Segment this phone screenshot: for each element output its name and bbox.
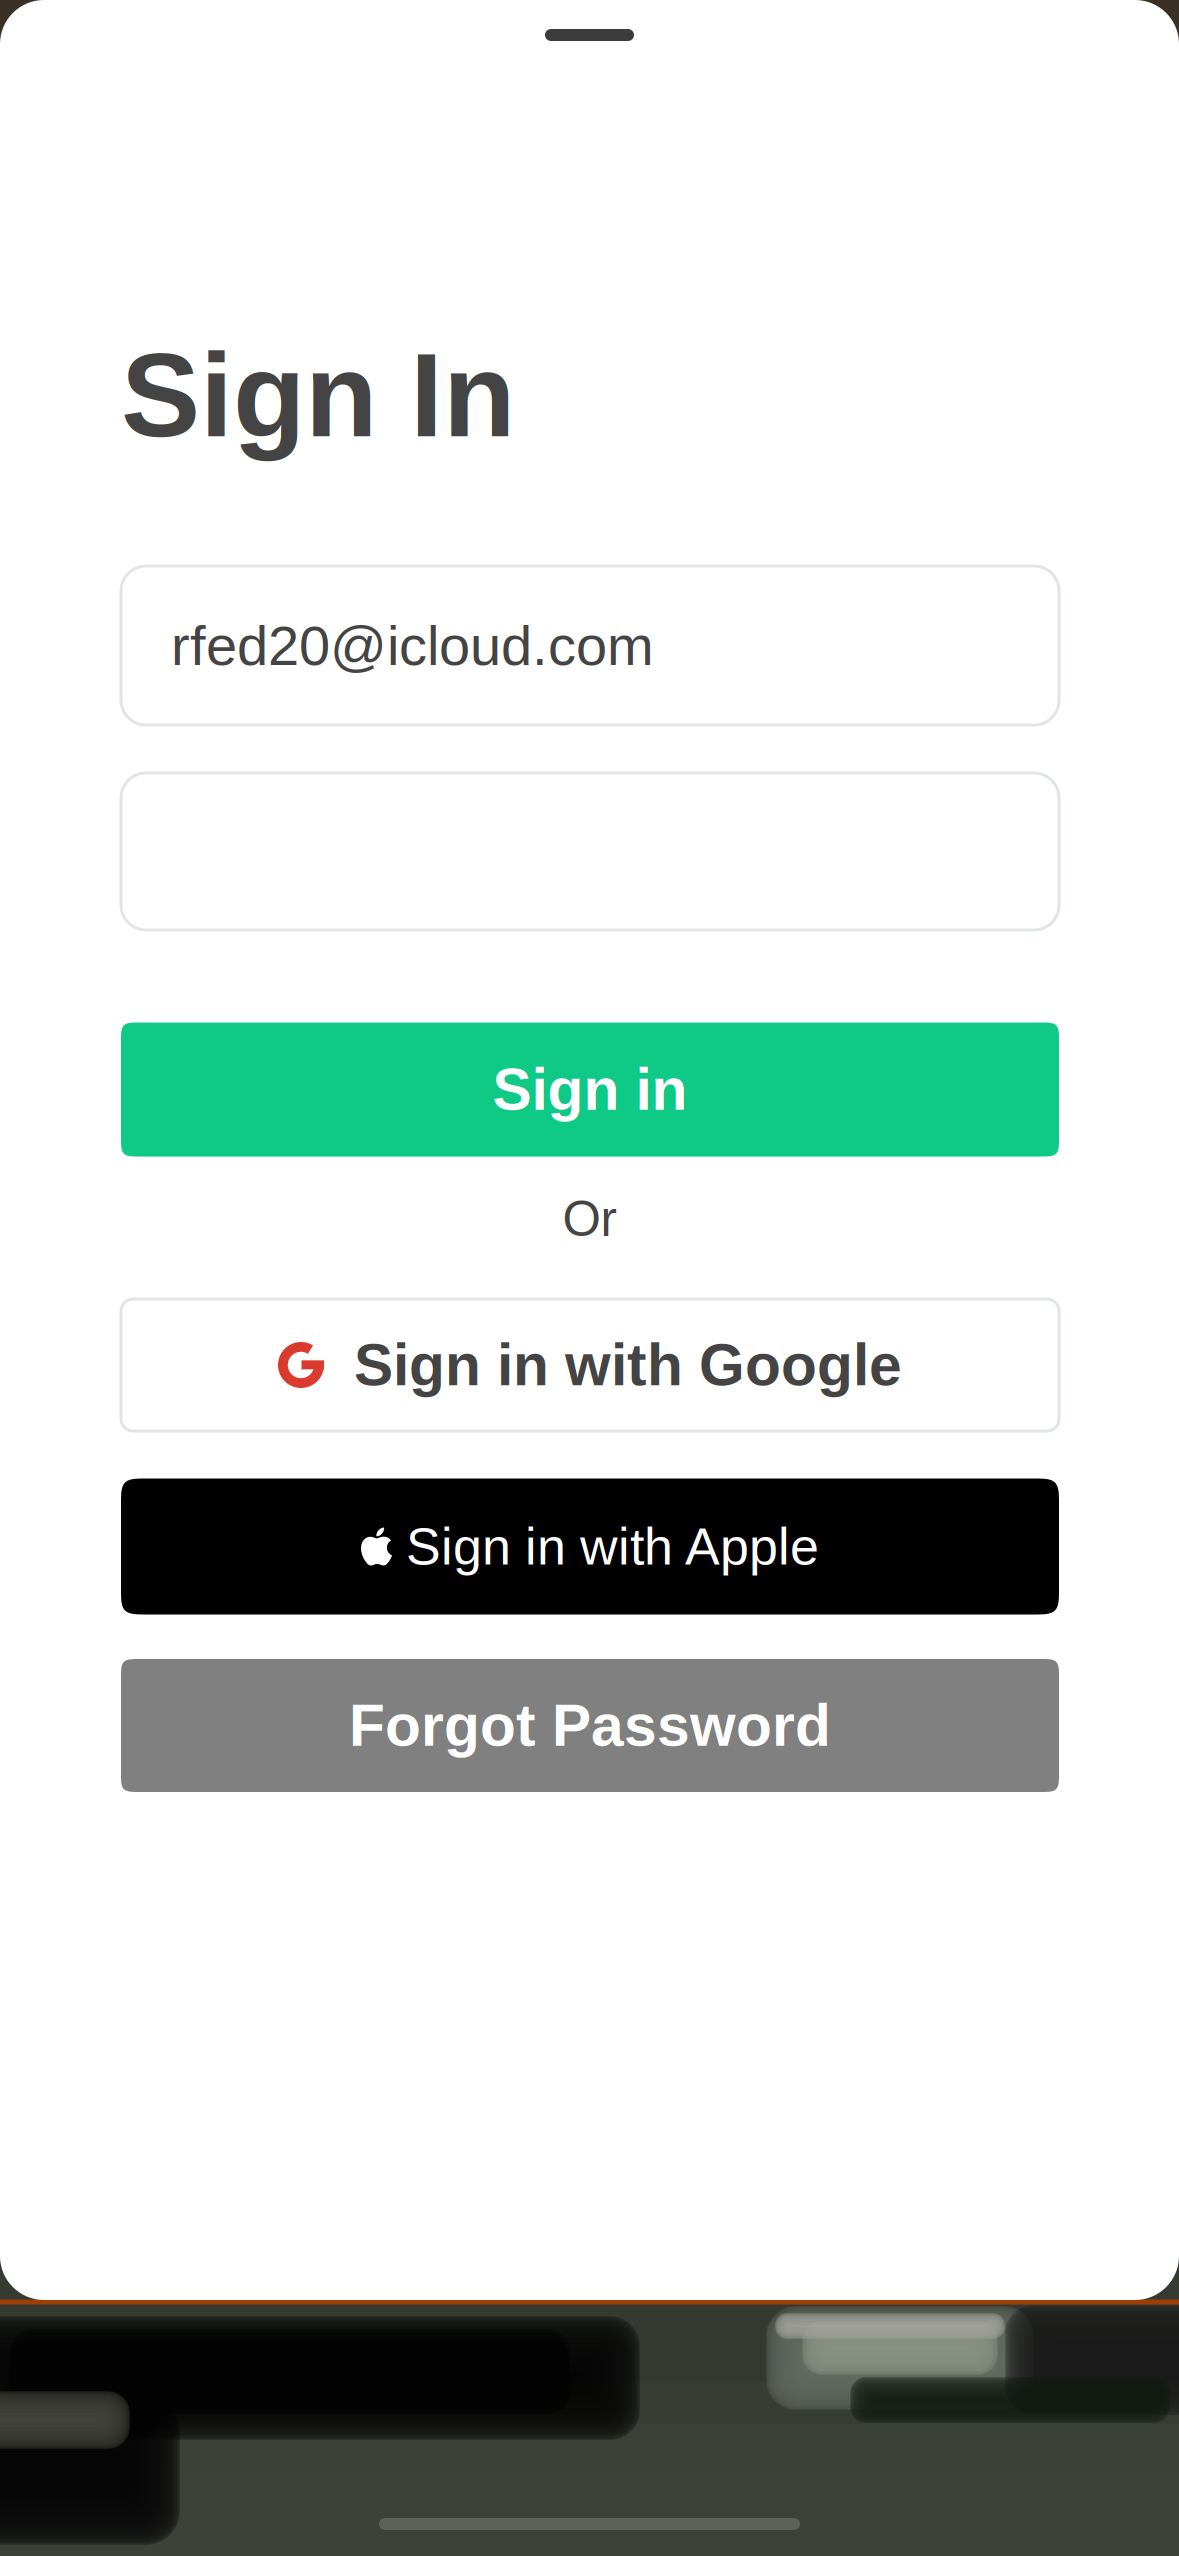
staticText: Sign in with Apple: [406, 1517, 819, 1576]
staticText: Sign in with Google: [354, 1332, 902, 1398]
staticText: rfed20@icloud.com: [171, 614, 654, 677]
staticText: Or: [562, 1191, 616, 1246]
button[interactable]: Sign in: [121, 1022, 1059, 1156]
staticText: Sign In: [121, 329, 515, 461]
staticText: Sign in: [492, 1057, 687, 1122]
button[interactable]: Sign in with Apple: [121, 1478, 1059, 1614]
staticText: Forgot Password: [349, 1693, 831, 1758]
button[interactable]: Forgot Password: [121, 1659, 1059, 1792]
button[interactable]: Sign in with Google: [121, 1299, 1059, 1431]
